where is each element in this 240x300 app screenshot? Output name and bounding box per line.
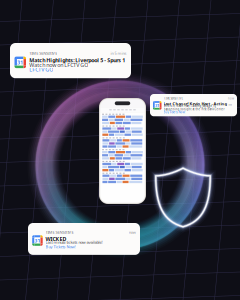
button[interactable]: 31	[10, 43, 131, 78]
button[interactable]: 31	[28, 223, 140, 255]
staticText: 31	[34, 237, 40, 244]
staticText: Match Highlights: Liverpool 5 - Spurs 1	[29, 57, 125, 64]
staticText: TIME SENSITIVE	[163, 97, 182, 100]
staticText: 31	[155, 103, 159, 108]
staticText: Last Chance! Kevin Hart - Acting My Age	[163, 101, 234, 106]
staticText: in 5 mins	[110, 50, 126, 56]
staticText: Watch now on LFCTV GO	[29, 61, 88, 68]
staticText: now	[228, 97, 234, 100]
staticText: Buy Tickets Now!	[163, 110, 185, 114]
staticText: now	[129, 229, 136, 235]
staticText: WICKED	[45, 235, 66, 242]
staticText: This is it. Kevin Hart – Acting My Age i…	[163, 104, 215, 108]
button[interactable]: 31	[150, 94, 237, 116]
staticText: 31	[17, 59, 23, 66]
staticText: Last minute tickets now available!	[45, 240, 102, 245]
staticText: LFCTV GO	[29, 66, 53, 73]
staticText: TIME SENSITIVE	[29, 50, 57, 56]
staticText: TIME SENSITIVE	[45, 229, 73, 235]
staticText: happening tonight at the First Bank Cent…	[163, 107, 224, 111]
staticText: Buy Tickets Now!	[45, 244, 75, 249]
